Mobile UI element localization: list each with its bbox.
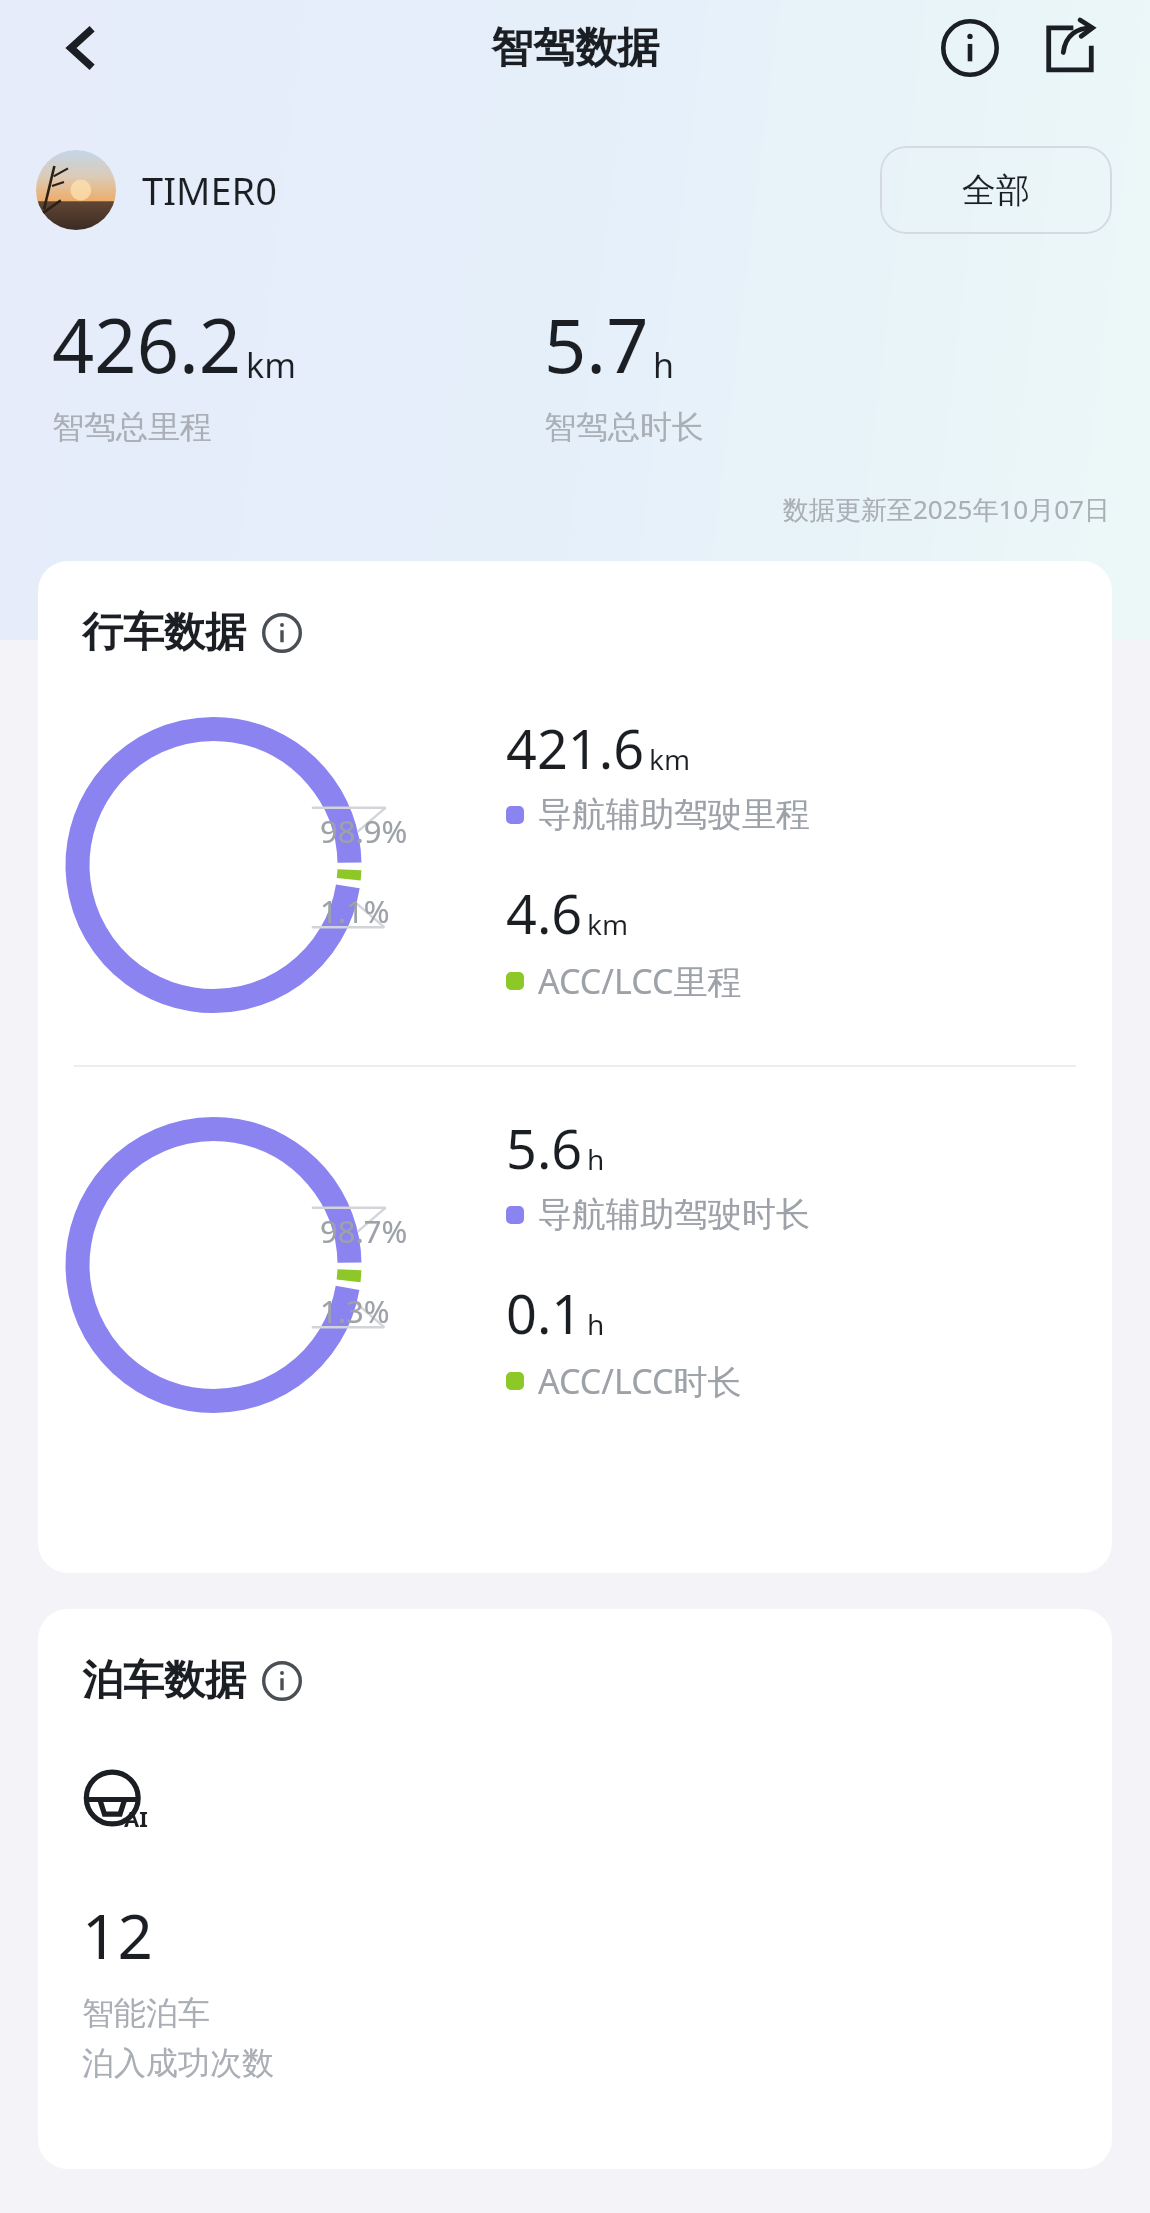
button[interactable]: Share — [1030, 8, 1110, 88]
staticText: 泊入成功次数 — [82, 2043, 274, 2083]
button[interactable]: 全部 — [880, 146, 1112, 234]
staticText: 12 — [82, 1893, 153, 1977]
staticText: 智驾数据 — [491, 22, 659, 75]
staticText: km — [587, 905, 629, 943]
button[interactable]: Back — [42, 8, 122, 88]
staticText: 0.1 — [506, 1276, 583, 1350]
staticText: km — [246, 342, 296, 388]
staticText: h — [653, 342, 675, 388]
staticText: 1.1% — [320, 890, 390, 932]
staticText: 行车数据 — [82, 607, 246, 659]
staticText: TIMER0 — [142, 164, 277, 216]
staticText: h — [587, 1140, 605, 1178]
staticText: 数据更新至2025年10月07日 — [783, 491, 1110, 527]
staticText: 98.9% — [320, 810, 408, 852]
staticText: 421.6 — [506, 711, 645, 785]
staticText: 智能泊车 — [82, 1993, 210, 2033]
staticText: 全部 — [962, 169, 1030, 212]
staticText: AI — [124, 1803, 148, 1833]
staticText: 5.6 — [506, 1111, 583, 1185]
staticText: 导航辅助驾驶时长 — [538, 1193, 810, 1236]
button[interactable]: 行车数据 — [82, 607, 302, 659]
staticText: km — [649, 740, 691, 778]
button[interactable]: Info — [930, 8, 1010, 88]
staticText: ACC/LCC时长 — [538, 1358, 742, 1404]
staticText: 智驾总里程 — [52, 407, 212, 447]
staticText: 导航辅助驾驶里程 — [538, 793, 810, 836]
staticText: 5.7 — [544, 294, 649, 395]
staticText: 泊车数据 — [82, 1655, 246, 1707]
staticText: 426.2 — [52, 294, 242, 395]
staticText: ACC/LCC里程 — [538, 958, 742, 1004]
staticText: 4.6 — [506, 876, 583, 950]
button[interactable]: Profile photo — [36, 150, 116, 230]
button[interactable]: 泊车数据 — [82, 1655, 302, 1707]
staticText: 98.7% — [320, 1210, 408, 1252]
staticText: 1.3% — [320, 1290, 390, 1332]
staticText: h — [587, 1305, 605, 1343]
staticText: 智驾总时长 — [544, 407, 704, 447]
